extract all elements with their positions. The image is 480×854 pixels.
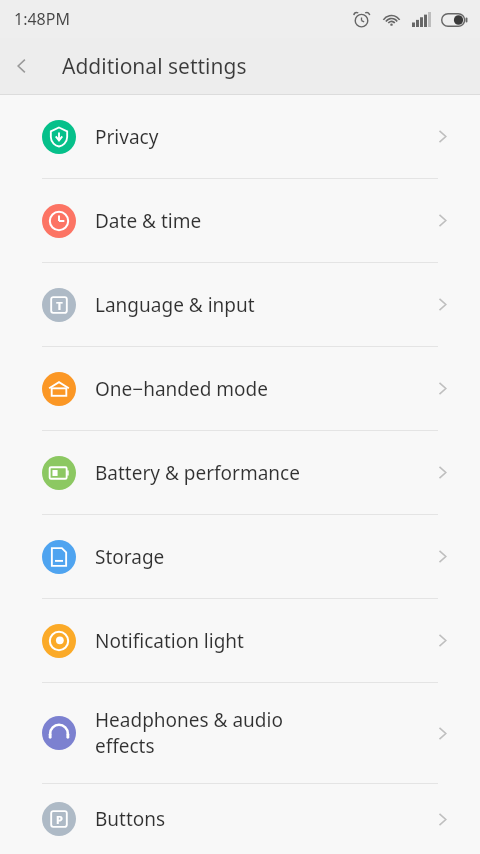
staticText: Headphones & audio effects [95, 707, 435, 759]
staticText: Storage [95, 544, 435, 570]
button[interactable]: T [0, 263, 480, 346]
staticText: T [56, 298, 63, 313]
button[interactable]: Privacy [0, 95, 480, 178]
staticText: Date & time [95, 208, 435, 234]
staticText: 1:48PM [14, 8, 70, 30]
button[interactable]: Date & time [0, 179, 480, 262]
button[interactable]: Battery & performance [0, 431, 480, 514]
staticText: Privacy [95, 124, 435, 150]
staticText: Notification light [95, 628, 435, 654]
staticText: Battery & performance [95, 460, 435, 486]
button[interactable]: One−handed mode [0, 347, 480, 430]
button[interactable]: P [0, 784, 480, 854]
staticText: Additional settings [62, 52, 247, 81]
staticText: Language & input [95, 292, 435, 318]
staticText: P [56, 812, 63, 827]
button[interactable]: Storage [0, 515, 480, 598]
staticText: Buttons [95, 806, 435, 832]
staticText: One−handed mode [95, 376, 435, 402]
button[interactable]: Notification light [0, 599, 480, 682]
button[interactable]: Headphones & audio effects [0, 683, 480, 783]
button[interactable]: Back [0, 44, 44, 88]
